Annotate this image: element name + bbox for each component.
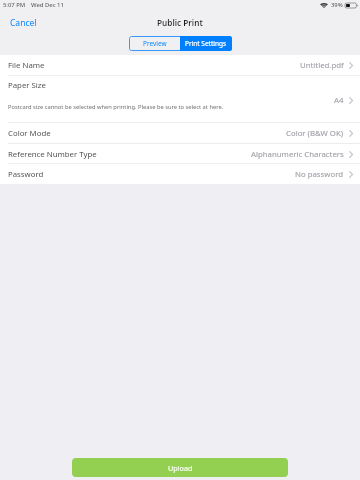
staticText: Color Mode: [8, 128, 51, 139]
staticText: Cancel: [10, 17, 37, 29]
staticText: No password: [295, 169, 344, 180]
staticText: Untitled.pdf: [300, 60, 344, 71]
button[interactable]: Preview: [129, 36, 180, 51]
staticText: Preview: [143, 39, 167, 48]
staticText: Password: [8, 169, 44, 180]
staticText: Print Settings: [185, 39, 227, 48]
button[interactable]: Password: [0, 164, 360, 184]
staticText: Public Print: [157, 17, 203, 28]
button[interactable]: Upload: [72, 458, 288, 477]
staticText: Wed Dec 11: [31, 1, 64, 9]
staticText: Postcard size cannot be selected when pr…: [8, 103, 224, 111]
staticText: Upload: [168, 463, 193, 473]
button[interactable]: Reference Number Type: [0, 144, 360, 164]
staticText: Paper Size: [8, 80, 46, 91]
button[interactable]: Cancel: [5, 14, 42, 32]
staticText: File Name: [8, 60, 45, 71]
button[interactable]: Color Mode: [0, 123, 360, 144]
button[interactable]: File Name: [0, 55, 360, 76]
staticText: 5:07 PM: [3, 1, 26, 9]
staticText: Alphanumeric Characters: [251, 149, 344, 160]
button[interactable]: Paper Size: [0, 76, 360, 123]
staticText: Color (B&W OK): [286, 128, 344, 139]
staticText: Reference Number Type: [8, 149, 97, 160]
button[interactable]: Print Settings: [180, 36, 232, 51]
staticText: 39%: [331, 1, 343, 9]
staticText: A4: [334, 95, 344, 106]
